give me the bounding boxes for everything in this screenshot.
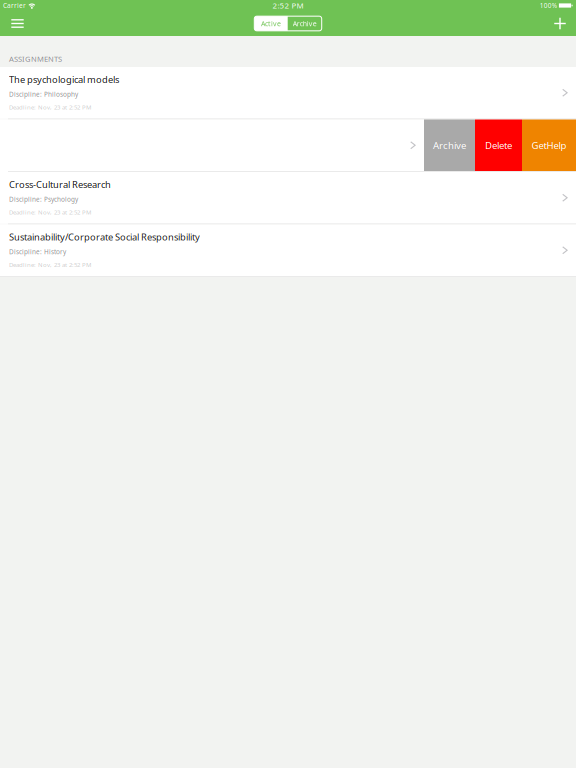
button[interactable]: New assignment [542,12,576,34]
staticText: Discipline: Psychology [9,195,78,204]
staticText: The psychological models [9,73,119,86]
button[interactable]: The psychological models [0,67,576,118]
staticText: Active [261,19,281,28]
staticText: Cross-Cultural Research [9,178,111,191]
button[interactable]: Archive [424,119,475,171]
staticText: GetHelp [531,139,566,152]
staticText: Archive [293,19,317,28]
button[interactable]: Sustainability/Corporate Social Responsi… [0,224,576,276]
button[interactable]: Cross-Cultural Research [0,172,576,223]
staticText: Archive [433,139,466,152]
staticText: Deadline: Nov, 23 at 2:52 PM [9,208,91,216]
staticText: 100% [540,1,557,10]
button[interactable]: Archive [288,16,322,31]
staticText: Deadline: Nov, 23 at 2:52 PM [9,103,91,111]
button[interactable]: Active [254,16,288,31]
staticText: Delete [485,139,512,152]
staticText: Sustainability/Corporate Social Responsi… [9,230,200,243]
staticText: Deadline: Nov, 23 at 2:52 PM [9,260,91,269]
staticText: ASSIGNMENTS [9,54,62,64]
staticText: Discipline: Philosophy [9,90,78,99]
button[interactable]: Menu [0,12,35,34]
button[interactable]: Delete [475,119,522,171]
button[interactable]: GetHelp [522,119,576,171]
staticText: Discipline: History [9,247,66,256]
staticText: Carrier [3,1,26,10]
staticText: 2:52 PM [272,0,303,11]
